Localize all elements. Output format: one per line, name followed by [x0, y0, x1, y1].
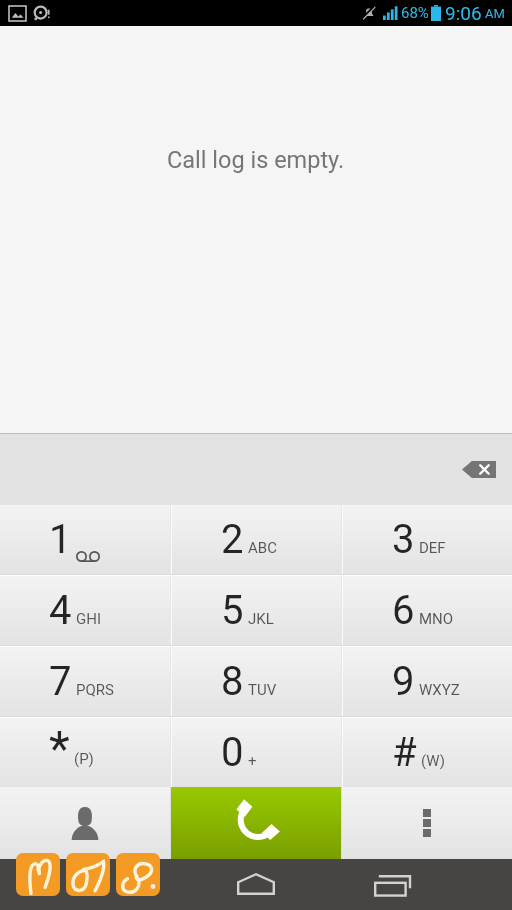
staticText: 1 [49, 516, 72, 563]
button[interactable]: # [343, 718, 512, 787]
staticText: Call log is empty. [167, 146, 345, 174]
button[interactable]: Shortcut [16, 853, 60, 896]
staticText: 2 [221, 516, 244, 563]
button[interactable]: 3 [343, 505, 512, 574]
staticText: (P) [74, 750, 94, 768]
staticText: # [392, 729, 417, 776]
button[interactable]: Shortcut [116, 853, 160, 896]
button[interactable]: Recents [374, 874, 414, 896]
staticText: 9 [392, 658, 415, 705]
staticText: PQRS [76, 681, 114, 699]
staticText: 6 [392, 587, 415, 634]
staticText: JKL [248, 610, 274, 628]
button[interactable]: 2 [172, 505, 341, 574]
button[interactable]: More options [342, 787, 512, 859]
button[interactable]: 9 [343, 647, 512, 716]
button[interactable]: Contacts [0, 787, 170, 859]
staticText: + [248, 752, 257, 770]
staticText: ABC [248, 539, 277, 557]
staticText: AM [485, 6, 505, 21]
button[interactable]: 0 [172, 718, 341, 787]
button[interactable]: Backspace [455, 448, 503, 490]
staticText: 68% [401, 4, 429, 22]
button[interactable]: Shortcut [66, 853, 110, 896]
staticText: MNO [419, 610, 454, 628]
staticText: * [49, 720, 70, 776]
staticText: 8 [221, 658, 244, 705]
staticText: 4 [49, 587, 72, 634]
staticText: 0 [221, 729, 244, 776]
button[interactable]: 6 [343, 576, 512, 645]
button[interactable]: 4 [0, 576, 170, 645]
button[interactable]: Call [171, 787, 341, 859]
button[interactable]: 7 [0, 647, 170, 716]
staticText: WXYZ [419, 681, 460, 699]
staticText: 5 [221, 587, 244, 634]
staticText: DEF [419, 539, 446, 557]
staticText: 7 [49, 658, 72, 705]
staticText: 9:06 [445, 2, 482, 24]
staticText: 3 [392, 516, 415, 563]
staticText: (W) [421, 752, 445, 770]
staticText: GHI [76, 610, 101, 628]
button[interactable]: * [0, 718, 170, 787]
button[interactable]: Home [237, 873, 275, 895]
staticText: TUV [248, 681, 277, 699]
button[interactable]: 8 [172, 647, 341, 716]
button[interactable]: 5 [172, 576, 341, 645]
button[interactable]: 1 [0, 505, 170, 574]
